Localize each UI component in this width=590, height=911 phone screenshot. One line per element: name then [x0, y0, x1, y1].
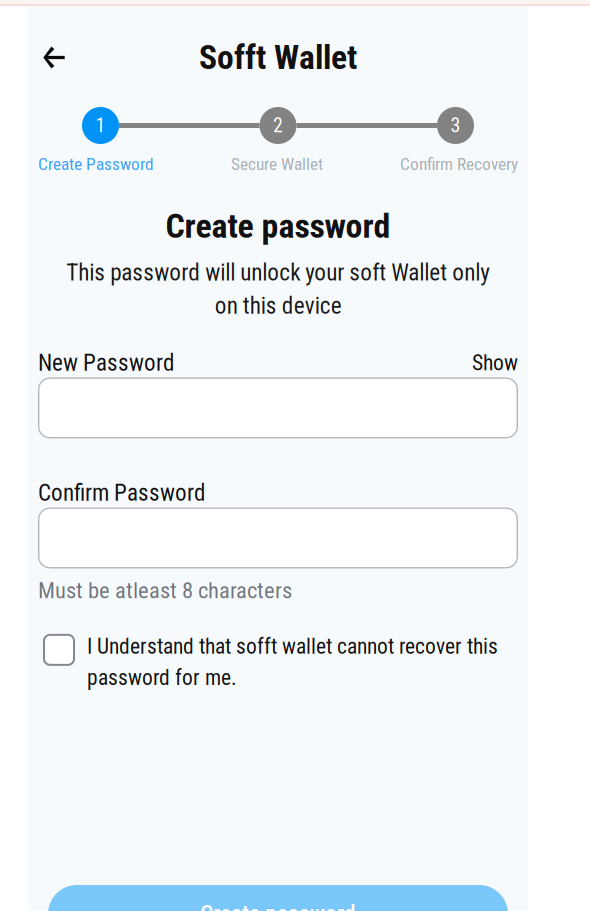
staticText: Show [472, 350, 518, 375]
button[interactable]: Show [472, 350, 518, 375]
staticText: Confirm Password [38, 479, 205, 506]
staticText: Must be atleast 8 characters [38, 577, 292, 604]
staticText: Create password [200, 900, 356, 911]
staticText: Confirm Recovery [400, 154, 518, 174]
button[interactable]: I Understand that sofft wallet cannot re… [38, 634, 518, 690]
staticText: I Understand that sofft wallet cannot re… [87, 634, 498, 690]
staticText: Sofft Wallet [199, 38, 357, 77]
staticText: 3 [450, 114, 460, 137]
button[interactable]: Back [38, 28, 83, 75]
staticText: Create password [165, 206, 390, 246]
staticText: Secure Wallet [231, 154, 323, 174]
staticText: Create Password [38, 154, 154, 174]
staticText: New Password [38, 349, 174, 376]
staticText: This password will unlock your soft Wall… [66, 259, 490, 319]
staticText: 2 [273, 114, 283, 137]
button[interactable]: Create password [48, 885, 508, 911]
staticText: 1 [95, 114, 105, 137]
